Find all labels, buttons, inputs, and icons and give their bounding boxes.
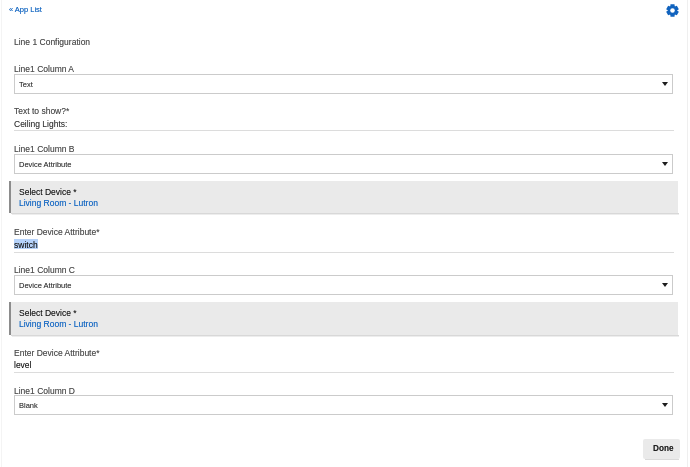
staticText: Living Room - Lutron — [19, 319, 98, 328]
staticText: switch — [14, 240, 38, 249]
staticText: Living Room - Lutron — [19, 198, 98, 207]
staticText: Text — [19, 80, 33, 88]
staticText: Select Device * — [19, 187, 77, 196]
staticText: Line1 Column C — [14, 265, 75, 274]
staticText: Line1 Column C — [14, 265, 75, 274]
staticText: level — [14, 360, 32, 369]
staticText: Device Attribute — [19, 160, 72, 168]
staticText: Line1 Column D — [14, 386, 75, 395]
button[interactable]: Select Device * — [9, 181, 678, 213]
staticText: Text to show?* — [14, 106, 70, 115]
staticText: switch — [14, 240, 38, 249]
staticText: Text to show?* — [14, 106, 70, 115]
staticText: Enter Device Attribute* — [14, 227, 100, 236]
staticText: Living Room - Lutron — [19, 319, 98, 328]
button[interactable]: Select Device * — [9, 302, 678, 335]
staticText: Line1 Column B — [14, 144, 75, 153]
button[interactable]: Text — [15, 75, 672, 93]
staticText: Line1 Column B — [14, 144, 75, 153]
staticText: Line 1 Configuration — [14, 37, 91, 46]
staticText: Ceiling Lights: — [14, 119, 68, 128]
staticText: « App List — [9, 5, 42, 13]
staticText: Select Device * — [19, 308, 77, 317]
button[interactable]: « App List — [9, 5, 42, 13]
staticText: Device Attribute — [19, 160, 72, 168]
staticText: Select Device * — [19, 187, 77, 196]
staticText: Blank — [19, 401, 38, 409]
staticText: Line1 Column A — [14, 64, 75, 73]
staticText: Text — [19, 80, 33, 88]
button[interactable]: Done — [643, 439, 680, 459]
staticText: Done — [653, 444, 674, 453]
button[interactable]: Blank — [15, 396, 672, 414]
staticText: Line 1 Configuration — [14, 37, 91, 46]
staticText: Enter Device Attribute* — [14, 348, 100, 357]
staticText: Done — [653, 444, 674, 453]
button[interactable]: Device Attribute — [15, 155, 672, 173]
staticText: Line1 Column D — [14, 386, 75, 395]
staticText: Enter Device Attribute* — [14, 227, 100, 236]
staticText: Device Attribute — [19, 281, 72, 289]
staticText: « App List — [9, 5, 42, 13]
staticText: Line1 Column A — [14, 64, 75, 73]
button[interactable]: Device Attribute — [15, 276, 672, 294]
staticText: Ceiling Lights: — [14, 119, 68, 128]
button[interactable]: Settings — [664, 2, 680, 18]
staticText: Blank — [19, 401, 38, 409]
staticText: Device Attribute — [19, 281, 72, 289]
staticText: level — [14, 360, 32, 369]
staticText: Select Device * — [19, 308, 77, 317]
staticText: Living Room - Lutron — [19, 198, 98, 207]
staticText: Enter Device Attribute* — [14, 348, 100, 357]
